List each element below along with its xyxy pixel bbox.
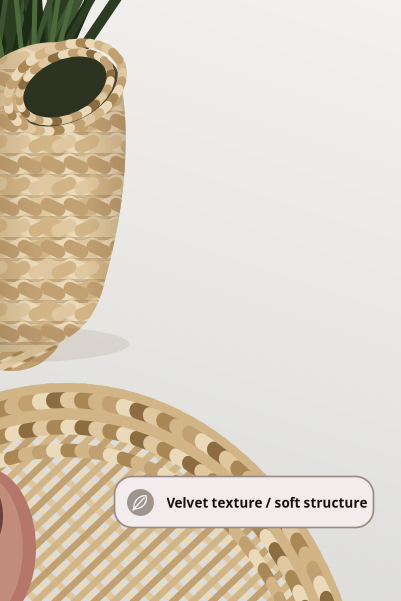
- staticText: Velvet texture / soft structure: [166, 494, 367, 511]
- button[interactable]: Velvet texture / soft structure: [114, 476, 373, 527]
